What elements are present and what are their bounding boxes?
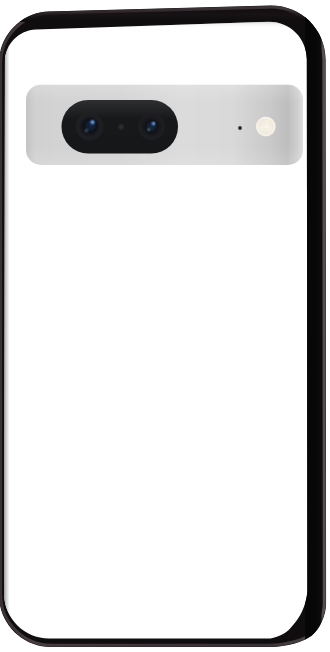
button[interactable]: Google Pixel phone, rear view [0, 0, 330, 652]
